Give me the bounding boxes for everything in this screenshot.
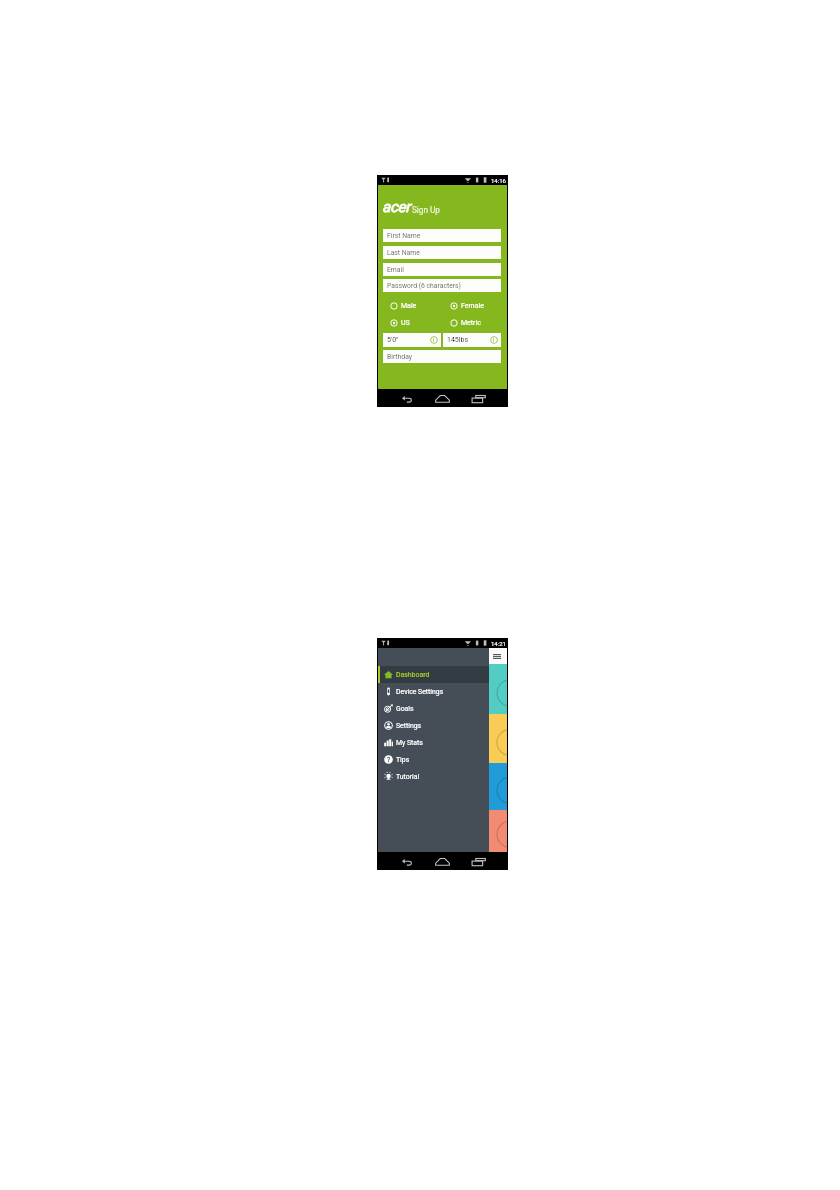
button[interactable]: Last Name xyxy=(383,246,501,259)
button[interactable]: Password (6 characters) xyxy=(383,279,501,292)
staticText: acer xyxy=(382,198,411,216)
staticText: 14:21 xyxy=(491,640,506,647)
button[interactable]: More info xyxy=(430,336,438,344)
button[interactable]: Goals xyxy=(378,700,489,717)
button[interactable]: Female xyxy=(450,302,484,310)
staticText: i xyxy=(433,337,435,343)
staticText: First Name xyxy=(387,232,421,240)
button[interactable]: Back xyxy=(378,852,421,870)
staticText: US xyxy=(401,319,410,327)
staticText: Tutorial xyxy=(396,773,420,781)
staticText: Dashboard xyxy=(396,671,430,679)
staticText: Device Settings xyxy=(396,688,444,696)
button[interactable]: More info xyxy=(490,336,498,344)
staticText: Sign Up xyxy=(412,205,440,215)
staticText: Birthday xyxy=(387,353,413,361)
staticText: i xyxy=(493,337,495,343)
staticText: 14:16 xyxy=(491,177,506,184)
button[interactable]: Settings xyxy=(378,717,489,734)
button[interactable]: ? xyxy=(378,751,489,768)
staticText: ? xyxy=(387,756,391,764)
button[interactable]: Tutorial xyxy=(378,768,489,785)
button[interactable]: Back xyxy=(378,389,421,407)
staticText: Password (6 characters) xyxy=(387,282,461,290)
button[interactable]: Device Settings xyxy=(378,683,489,700)
button[interactable]: US xyxy=(390,319,410,327)
button[interactable]: Open navigation drawer xyxy=(490,650,503,663)
staticText: Goals xyxy=(396,705,414,713)
staticText: 5'0" xyxy=(387,336,399,344)
staticText: Metric xyxy=(461,319,481,327)
button[interactable]: Home xyxy=(421,852,464,870)
button[interactable]: Male xyxy=(390,302,417,310)
staticText: Settings xyxy=(396,722,422,730)
staticText: 145lbs xyxy=(447,336,469,344)
button[interactable]: 5'0" xyxy=(383,333,441,347)
button[interactable]: Birthday xyxy=(383,350,501,363)
button[interactable]: Metric xyxy=(450,319,481,327)
button[interactable]: Recent apps xyxy=(464,389,507,407)
staticText: Last Name xyxy=(387,249,420,257)
staticText: Email xyxy=(387,266,404,274)
button[interactable]: Recent apps xyxy=(464,852,507,870)
staticText: Female xyxy=(461,302,484,310)
button[interactable]: Email xyxy=(383,263,501,276)
button[interactable]: 145lbs xyxy=(443,333,501,347)
button[interactable]: Home xyxy=(421,389,464,407)
staticText: Tips xyxy=(396,756,410,764)
staticText: Male xyxy=(401,302,417,310)
button[interactable]: First Name xyxy=(383,229,501,242)
button[interactable]: Dashboard xyxy=(378,666,489,683)
button[interactable]: My Stats xyxy=(378,734,489,751)
staticText: My Stats xyxy=(396,739,423,747)
